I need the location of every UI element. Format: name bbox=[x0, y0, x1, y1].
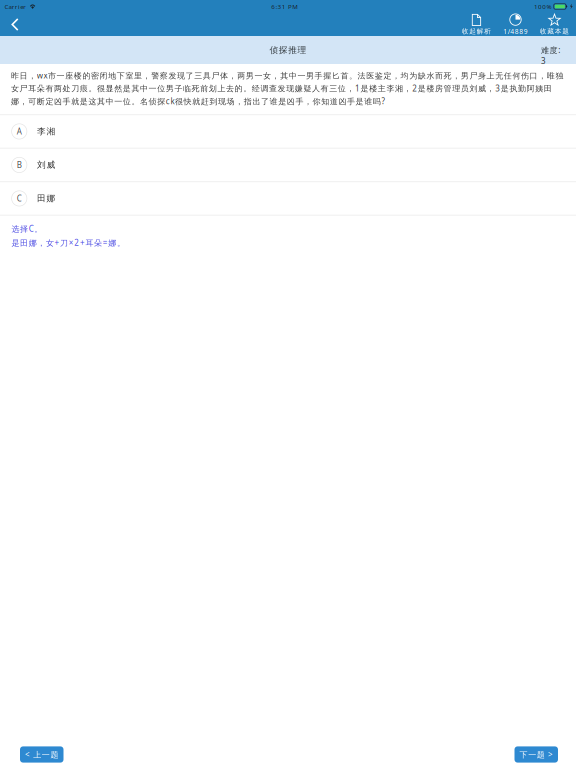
staticText: 刘威 bbox=[37, 159, 56, 170]
button[interactable]: 收起解析 bbox=[457, 13, 496, 36]
staticText: A bbox=[17, 126, 22, 137]
staticText: Carrier bbox=[4, 2, 26, 11]
staticText: 侦探推理 bbox=[270, 44, 306, 55]
staticText: 6:31 PM bbox=[271, 2, 298, 11]
button[interactable]: C bbox=[0, 182, 576, 216]
staticText: B bbox=[17, 159, 22, 170]
staticText: < 上一题 bbox=[25, 749, 58, 760]
staticText: 选择C。 bbox=[11, 223, 42, 234]
staticText: 田娜 bbox=[37, 193, 56, 204]
staticText: 收藏本题 bbox=[540, 27, 569, 36]
button[interactable]: 收藏本题 bbox=[535, 13, 574, 36]
button[interactable]: 下一题 > bbox=[514, 746, 558, 763]
button[interactable]: A bbox=[0, 115, 576, 149]
button[interactable]: B bbox=[0, 149, 576, 182]
staticText: 难度:3 bbox=[541, 45, 566, 55]
button[interactable]: < 上一题 bbox=[20, 746, 63, 763]
staticText: 100% bbox=[534, 2, 551, 11]
staticText: 收起解析 bbox=[462, 27, 491, 36]
button[interactable]: 1/4889 bbox=[496, 13, 535, 36]
staticText: C bbox=[17, 193, 22, 204]
button[interactable]: Back bbox=[0, 13, 30, 36]
staticText: 1/4889 bbox=[503, 27, 528, 36]
staticText: 下一题 > bbox=[520, 749, 553, 760]
staticText: 是田娜，女+刀×2+耳朵=娜。 bbox=[11, 237, 125, 248]
staticText: 李湘 bbox=[37, 126, 56, 137]
staticText: 昨日，wx市一座楼的密闭地下室里，警察发现了三具尸体，两男一女，其中一男手握匕首… bbox=[11, 70, 563, 107]
